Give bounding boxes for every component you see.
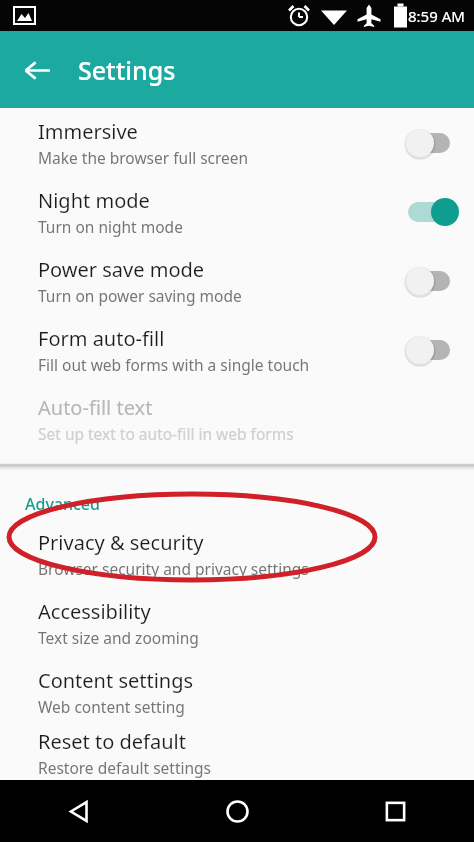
button[interactable]: Reset to default [0, 726, 474, 780]
staticText: Auto-fill text [38, 394, 153, 421]
staticText: Privacy & security [38, 529, 204, 556]
staticText: Night mode [38, 187, 150, 214]
staticText: Text size and zooming [38, 627, 199, 648]
staticText: Form auto-fill [38, 325, 165, 352]
staticText: Web content setting [38, 696, 185, 717]
staticText: 8:59 AM [408, 6, 465, 26]
button[interactable]: Recent apps [316, 780, 474, 842]
button[interactable]: Home [158, 780, 316, 842]
staticText: Browser security and privacy settings [38, 558, 309, 579]
staticText: Set up text to auto-fill in web forms [38, 423, 294, 444]
button[interactable]: Off [404, 334, 460, 366]
staticText: Restore default settings [38, 757, 212, 778]
button: Auto-fill text [0, 384, 474, 453]
staticText: Settings [78, 53, 176, 87]
button[interactable]: Off [404, 127, 460, 159]
staticText: Content settings [38, 667, 194, 694]
staticText: Fill out web forms with a single touch [38, 354, 310, 375]
staticText: Advanced [25, 493, 100, 515]
button[interactable]: Power save mode [0, 246, 474, 315]
button[interactable]: Navigate up [13, 46, 61, 94]
staticText: Make the browser full screen [38, 147, 249, 168]
button[interactable]: Off [404, 265, 460, 297]
staticText: Turn on power saving mode [38, 285, 242, 306]
staticText: Immersive [38, 118, 138, 145]
button[interactable]: Content settings [0, 657, 474, 726]
staticText: Accessibility [38, 598, 151, 625]
button[interactable]: Night mode [0, 177, 474, 246]
button[interactable]: Back [0, 780, 158, 842]
staticText: Power save mode [38, 256, 205, 283]
button[interactable]: Immersive [0, 108, 474, 177]
button[interactable]: Privacy & security [0, 519, 474, 588]
button[interactable]: Form auto-fill [0, 315, 474, 384]
staticText: Turn on night mode [38, 216, 183, 237]
button[interactable]: On [404, 196, 460, 228]
button[interactable]: Accessibility [0, 588, 474, 657]
staticText: Reset to default [38, 728, 186, 755]
